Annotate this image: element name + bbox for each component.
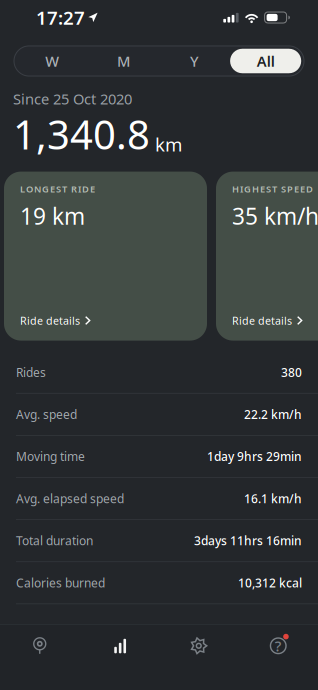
staticText: All — [257, 51, 275, 71]
button[interactable]: Avg. elapsed speed — [0, 478, 318, 520]
staticText: H I G H E S T S P E E D — [232, 183, 313, 195]
staticText: Total duration — [16, 533, 93, 549]
staticText: L O N G E S T R I D E — [20, 183, 95, 195]
staticText: Since 25 Oct 2020 — [13, 89, 132, 108]
button[interactable]: Calories burned — [0, 562, 318, 604]
button[interactable]: L O N G E S T R I D E — [4, 172, 207, 341]
staticText: 19 km — [20, 201, 85, 231]
staticText: 35 km/h — [232, 201, 318, 231]
staticText: km — [155, 132, 182, 157]
button[interactable]: Help — [238, 624, 318, 668]
staticText: 22.2 km/h — [244, 406, 302, 422]
staticText: Ride details — [232, 313, 292, 328]
staticText: M — [117, 51, 130, 71]
button[interactable]: Map — [0, 624, 79, 668]
staticText: Calories burned — [16, 575, 105, 591]
button[interactable]: Moving time — [0, 436, 318, 478]
staticText: Y — [190, 51, 199, 71]
staticText: 1day 9hrs 29min — [207, 448, 302, 464]
staticText: Avg. elapsed speed — [16, 491, 124, 506]
button[interactable]: All — [230, 49, 301, 73]
button[interactable]: Settings — [159, 624, 238, 668]
button[interactable]: Statistics — [79, 624, 159, 668]
staticText: ? — [275, 636, 282, 656]
staticText: 10,312 kcal — [238, 575, 302, 591]
staticText: 16.1 km/h — [244, 491, 302, 506]
button[interactable]: Rides — [0, 352, 318, 394]
staticText: W — [45, 51, 59, 71]
staticText: Moving time — [16, 448, 85, 464]
staticText: 17:27 — [36, 5, 85, 30]
button[interactable]: H I G H E S T S P E E D — [216, 172, 318, 341]
staticText: 380 — [281, 364, 302, 380]
staticText: 3days 11hrs 16min — [194, 533, 302, 549]
staticText: Rides — [16, 364, 46, 380]
button[interactable]: Y — [159, 49, 230, 73]
staticText: Avg. speed — [16, 406, 77, 422]
staticText: 1,340.8 — [13, 107, 150, 161]
button[interactable]: Total duration — [0, 520, 318, 562]
button[interactable]: Avg. speed — [0, 394, 318, 436]
staticText: Ride details — [20, 313, 80, 328]
button[interactable]: M — [88, 49, 159, 73]
button[interactable]: W — [17, 49, 88, 73]
